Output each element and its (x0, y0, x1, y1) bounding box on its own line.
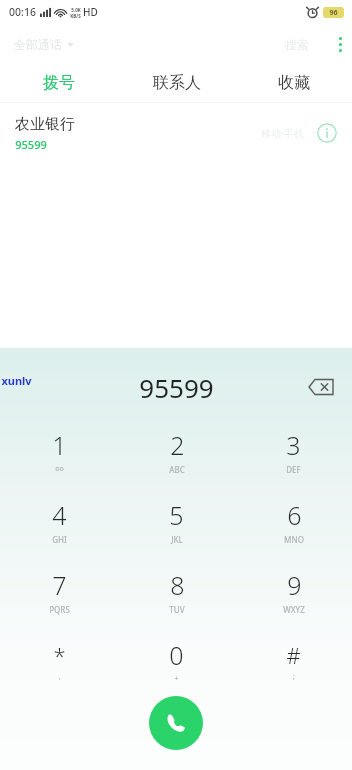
staticText: 拨号 (43, 73, 75, 93)
button[interactable]: 1 (0, 416, 118, 486)
button[interactable]: 8 (118, 556, 235, 626)
button[interactable]: Backspace (304, 370, 338, 404)
staticText: 搜索 (285, 37, 309, 52)
staticText: * (53, 640, 66, 670)
staticText: 3 (286, 428, 301, 462)
staticText: 2 (170, 428, 185, 462)
staticText: JKL (171, 534, 183, 545)
staticText: WXYZ (283, 604, 305, 615)
staticText: # (286, 640, 301, 670)
staticText: 7 (52, 568, 67, 602)
staticText: KB/S (70, 13, 81, 18)
staticText: 农业银行 (15, 115, 75, 134)
button[interactable]: # (235, 626, 352, 696)
button[interactable]: Call details (314, 120, 340, 146)
staticText: TUV (169, 604, 185, 615)
button[interactable]: 2 (118, 416, 235, 486)
staticText: ABC (169, 464, 185, 475)
staticText: DEF (286, 464, 301, 475)
staticText: PQRS (49, 604, 70, 615)
staticText: 96 (329, 8, 338, 18)
button[interactable]: 联系人 (118, 64, 235, 102)
staticText: + (174, 674, 179, 684)
button[interactable]: 7 (0, 556, 118, 626)
staticText: 6 (287, 498, 302, 532)
button[interactable]: 6 (235, 486, 352, 556)
staticText: 8 (170, 568, 185, 602)
button[interactable]: 0 (118, 626, 235, 696)
staticText: 9 (287, 568, 302, 602)
staticText: xunlv (1, 373, 32, 388)
button[interactable]: More options (329, 31, 352, 58)
staticText: 移动·手机 (261, 126, 304, 140)
button[interactable]: 全部通话 (12, 33, 76, 56)
staticText: oo (55, 464, 64, 474)
staticText: MNO (284, 534, 304, 545)
staticText: 收藏 (278, 73, 310, 93)
button[interactable]: 5 (118, 486, 235, 556)
button[interactable]: * (0, 626, 118, 696)
staticText: 95599 (15, 137, 47, 152)
staticText: 0 (169, 638, 184, 672)
staticText: 5.0K (71, 7, 81, 13)
button[interactable]: 4 (0, 486, 118, 556)
button[interactable]: 3 (235, 416, 352, 486)
button[interactable]: 拨号 (0, 64, 118, 102)
staticText: GHI (52, 534, 67, 545)
staticText: HD (83, 5, 98, 19)
staticText: 00:16 (9, 5, 36, 19)
staticText: 全部通话 (14, 37, 62, 52)
button[interactable]: 农业银行 (0, 103, 352, 163)
staticText: 5 (169, 498, 184, 532)
staticText: 95599 (139, 370, 214, 405)
button[interactable]: 搜索 (281, 31, 313, 58)
staticText: 1 (52, 428, 67, 462)
button[interactable]: 9 (235, 556, 352, 626)
staticText: 联系人 (153, 73, 201, 93)
staticText: ; (293, 672, 295, 682)
staticText: 4 (52, 498, 67, 532)
staticText: , (59, 672, 61, 682)
button[interactable]: Call (149, 696, 203, 750)
button[interactable]: 收藏 (235, 64, 352, 102)
